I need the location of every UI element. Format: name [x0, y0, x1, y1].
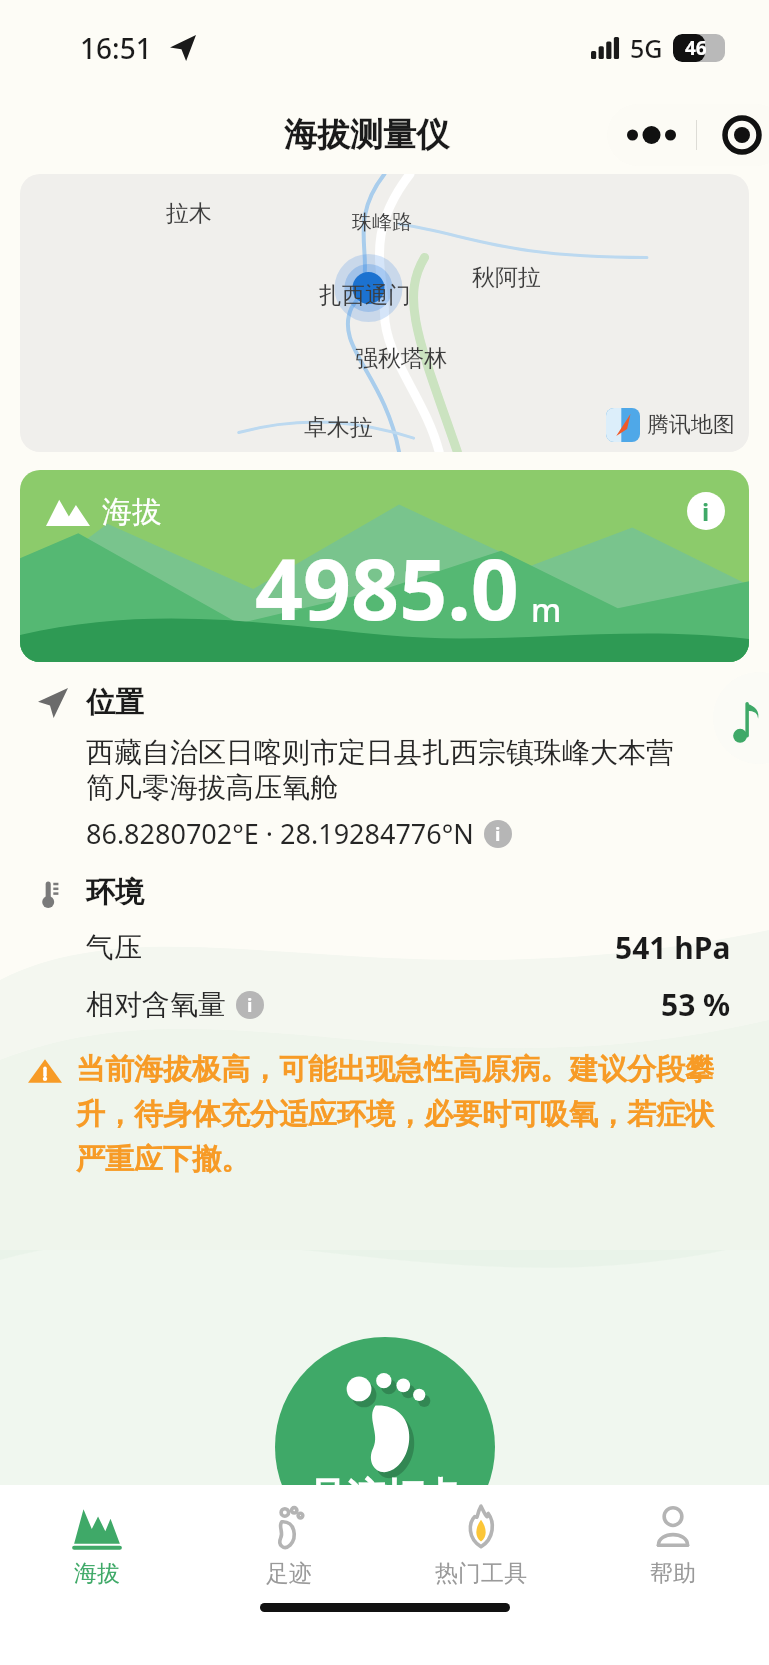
- button[interactable]: Info: [484, 820, 512, 848]
- staticText: 5G: [630, 31, 663, 65]
- staticText: 53 %: [661, 984, 731, 1025]
- button[interactable]: Info: [236, 991, 264, 1019]
- staticText: 卓木拉: [304, 413, 373, 442]
- staticText: 海拔: [74, 1559, 120, 1588]
- staticText: i: [495, 822, 501, 847]
- staticText: i: [702, 495, 710, 528]
- staticText: 86.8280702°E · 28.19284776°N: [86, 815, 474, 852]
- staticText: i: [247, 993, 253, 1018]
- button[interactable]: Map: [20, 174, 749, 452]
- staticText: 16:51: [80, 29, 152, 67]
- staticText: 足迹打卡: [309, 1473, 461, 1521]
- staticText: 相对含氧量: [86, 987, 226, 1022]
- button[interactable]: Music: [713, 672, 769, 764]
- staticText: 帮助: [650, 1559, 696, 1588]
- button[interactable]: 海拔: [20, 470, 749, 662]
- staticText: 热门工具: [435, 1559, 527, 1588]
- staticText: 西藏自治区日喀则市定日县扎西宗镇珠峰大本营: [86, 735, 674, 770]
- staticText: 海拔测量仪: [284, 114, 449, 156]
- staticText: 拉木: [166, 199, 212, 228]
- staticText: 4985.0: [255, 530, 519, 644]
- button[interactable]: 足迹: [193, 1485, 385, 1603]
- staticText: 541 hPa: [615, 927, 731, 968]
- button[interactable]: 帮助: [577, 1485, 769, 1603]
- button[interactable]: Menu and close: [607, 104, 769, 166]
- staticText: 珠峰路: [352, 210, 412, 235]
- staticText: 强秋塔林: [355, 344, 447, 373]
- staticText: 简凡零海拔高压氧舱: [86, 770, 338, 805]
- staticText: 当前海拔极高，可能出现急性高原病。建议分段攀升，待身体充分适应环境，必要时可吸氧…: [76, 1051, 741, 1177]
- button[interactable]: 海拔: [0, 1485, 193, 1603]
- staticText: 足迹: [266, 1559, 312, 1588]
- staticText: 秋阿拉: [472, 263, 541, 292]
- staticText: 环境: [86, 874, 144, 911]
- staticText: 气压: [86, 930, 142, 965]
- staticText: 腾讯地图: [647, 411, 735, 439]
- button[interactable]: Altitude info: [687, 492, 725, 530]
- staticText: m: [531, 588, 562, 632]
- staticText: 海拔: [102, 493, 162, 531]
- button[interactable]: 足迹打卡: [275, 1337, 495, 1557]
- staticText: 扎西通门: [319, 281, 411, 310]
- staticText: 位置: [86, 684, 144, 721]
- staticText: 46: [685, 35, 707, 61]
- button[interactable]: 热门工具: [385, 1485, 577, 1603]
